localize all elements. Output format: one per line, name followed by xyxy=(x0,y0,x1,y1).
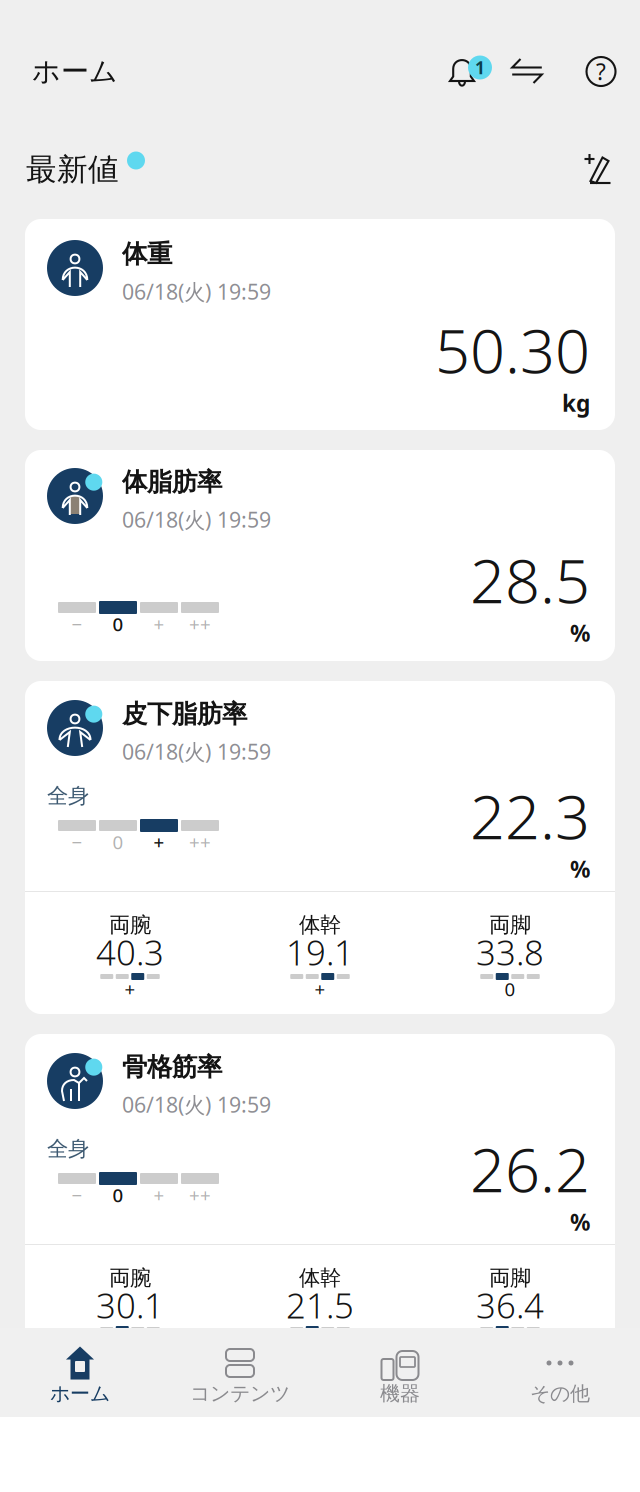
staticText: 両腕 xyxy=(109,912,151,938)
staticText: % xyxy=(570,1207,590,1237)
staticText: 機器 xyxy=(380,1381,420,1406)
button[interactable]: 骨格筋率 xyxy=(25,1034,615,1367)
staticText: 33.8 xyxy=(476,929,544,975)
button[interactable]: 皮下脂肪率 xyxy=(25,681,615,1014)
button[interactable]: Add measurement xyxy=(584,152,612,185)
button[interactable]: ホーム xyxy=(0,1328,160,1417)
staticText: 骨格筋率 xyxy=(122,1051,222,1082)
staticText: 28.5 xyxy=(470,539,590,620)
button[interactable]: Notifications xyxy=(449,55,492,87)
button[interactable]: 体脂肪率 xyxy=(25,450,615,661)
staticText: + xyxy=(124,977,135,1001)
staticText: ホーム xyxy=(32,54,118,89)
staticText: 1 xyxy=(475,56,485,79)
staticText: 0 xyxy=(504,977,515,1001)
staticText: 21.5 xyxy=(286,1282,354,1328)
staticText: 0 xyxy=(112,612,123,636)
staticText: − xyxy=(71,1183,82,1207)
staticText: + xyxy=(314,977,325,1001)
staticText: 体脂肪率 xyxy=(122,466,222,497)
button[interactable]: 体重 xyxy=(25,219,615,430)
staticText: 全身 xyxy=(47,1136,89,1162)
staticText: + xyxy=(153,830,164,854)
staticText: 体重 xyxy=(122,238,172,269)
staticText: 06/18(火) 19:59 xyxy=(122,1090,271,1119)
staticText: 26.2 xyxy=(470,1128,590,1209)
staticText: 両脚 xyxy=(489,1265,531,1291)
staticText: + xyxy=(153,1183,164,1207)
staticText: ? xyxy=(596,56,606,86)
staticText: その他 xyxy=(530,1381,590,1406)
staticText: 40.3 xyxy=(96,929,164,975)
button[interactable]: コンテンツ xyxy=(160,1328,320,1417)
button[interactable]: 機器 xyxy=(320,1328,480,1417)
staticText: % xyxy=(570,854,590,884)
staticText: 22.3 xyxy=(470,775,590,856)
staticText: 19.1 xyxy=(286,929,354,975)
staticText: 両脚 xyxy=(489,912,531,938)
staticText: コンテンツ xyxy=(190,1381,290,1406)
staticText: 06/18(火) 19:59 xyxy=(122,737,271,766)
staticText: kg xyxy=(562,388,590,418)
staticText: 体幹 xyxy=(299,1265,341,1291)
staticText: 全身 xyxy=(47,783,89,809)
staticText: 36.4 xyxy=(476,1282,544,1328)
staticText: ++ xyxy=(189,830,211,854)
button[interactable]: Help xyxy=(579,56,616,87)
staticText: ++ xyxy=(189,1183,211,1207)
staticText: 30.1 xyxy=(96,1282,164,1328)
staticText: 50.30 xyxy=(435,309,590,390)
button[interactable]: Sync data xyxy=(492,56,579,87)
staticText: 06/18(火) 19:59 xyxy=(122,505,271,534)
staticText: 06/18(火) 19:59 xyxy=(122,277,271,306)
button[interactable]: その他 xyxy=(480,1328,640,1417)
staticText: ホーム xyxy=(50,1381,110,1406)
staticText: − xyxy=(71,612,82,636)
staticText: 両腕 xyxy=(109,1265,151,1291)
staticText: + xyxy=(153,612,164,636)
staticText: 0 xyxy=(112,1183,123,1207)
staticText: % xyxy=(570,618,590,648)
staticText: ++ xyxy=(189,612,211,636)
staticText: 皮下脂肪率 xyxy=(122,698,247,729)
staticText: 0 xyxy=(112,830,123,854)
staticText: 体幹 xyxy=(299,912,341,938)
staticText: − xyxy=(71,830,82,854)
staticText: 最新値 xyxy=(26,151,119,188)
